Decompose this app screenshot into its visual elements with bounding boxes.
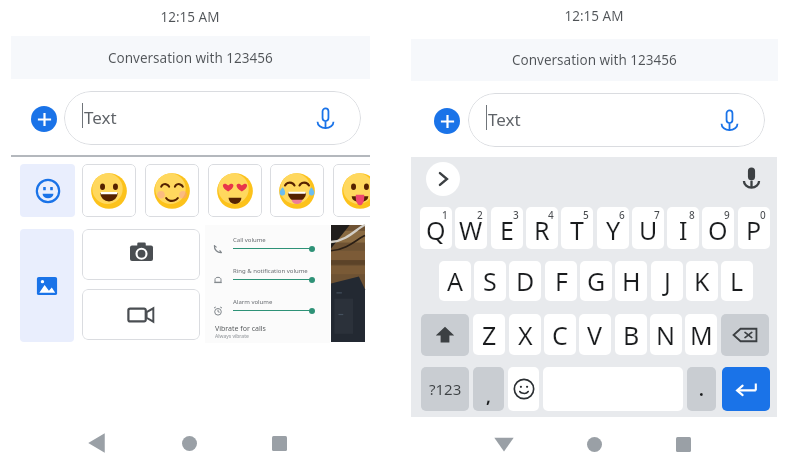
staticText: I [679, 213, 688, 247]
button[interactable]: T [561, 207, 593, 249]
button[interactable]: Add attachment [31, 106, 57, 132]
staticText: 8 [689, 208, 695, 222]
button[interactable]: G [580, 261, 612, 301]
button[interactable]: Emoji 1 [145, 164, 199, 217]
staticText: T [570, 213, 584, 247]
button[interactable]: Video [82, 289, 200, 340]
staticText: D [516, 264, 535, 298]
staticText: W [459, 213, 483, 247]
staticText: Alarm volume [233, 298, 273, 306]
staticText: 5 [583, 208, 589, 222]
staticText: 9 [724, 208, 730, 222]
staticText: Z [482, 318, 497, 352]
staticText: O [708, 213, 728, 247]
button[interactable]: U [632, 207, 664, 249]
staticText: L [730, 264, 744, 298]
button[interactable]: E [491, 207, 523, 249]
button[interactable]: Emoji [508, 367, 539, 411]
staticText: K [694, 264, 710, 298]
button[interactable]: D [509, 261, 541, 301]
staticText: Always vibrate [215, 333, 249, 340]
button[interactable]: L [721, 261, 753, 301]
staticText: U [639, 213, 658, 247]
button[interactable]: Z [473, 314, 505, 355]
button[interactable]: I [667, 207, 699, 249]
staticText: J [664, 264, 671, 298]
button[interactable]: Back [489, 429, 519, 457]
button[interactable]: Period [687, 367, 716, 411]
button[interactable]: Y [597, 207, 629, 249]
button[interactable]: O [702, 207, 734, 249]
staticText: G [587, 264, 606, 298]
staticText: N [656, 318, 676, 352]
staticText: ?123 [429, 379, 462, 399]
button[interactable]: Conversation with 123456 [11, 36, 370, 79]
button[interactable]: Conversation with 123456 [411, 39, 778, 81]
staticText: 0 [760, 208, 766, 222]
button[interactable]: C [544, 314, 576, 355]
button[interactable]: K [686, 261, 718, 301]
button[interactable]: M [685, 314, 717, 355]
staticText: A [447, 264, 463, 298]
staticText: Text [488, 108, 521, 131]
button[interactable]: P [738, 207, 770, 249]
button[interactable]: Home [579, 429, 609, 457]
button[interactable]: Text [64, 91, 361, 145]
button[interactable]: R [526, 207, 558, 249]
staticText: H [622, 264, 641, 298]
button[interactable]: Recent apps [264, 428, 294, 457]
button[interactable]: Emoji 0 [82, 164, 136, 217]
staticText: Text [84, 106, 117, 129]
button[interactable]: Symbols [421, 367, 469, 411]
button[interactable]: Shift [421, 314, 469, 356]
button[interactable]: Enter [722, 367, 770, 411]
staticText: 12:15 AM [554, 7, 634, 25]
button[interactable]: N [650, 314, 682, 355]
button[interactable]: Voice typing [736, 162, 766, 192]
staticText: Vibrate for calls [215, 324, 266, 334]
button[interactable]: Back [84, 428, 114, 457]
button[interactable]: Gallery [20, 229, 74, 342]
button[interactable]: J [651, 261, 683, 301]
button[interactable]: Backspace [721, 314, 769, 356]
staticText: 7 [654, 208, 660, 222]
staticText: X [518, 318, 533, 352]
button[interactable]: Expand toolbar [426, 162, 460, 196]
staticText: R [534, 213, 550, 247]
staticText: C [552, 318, 568, 352]
button[interactable]: Add attachment [434, 108, 460, 134]
staticText: Ring & notification volume [233, 267, 308, 275]
button[interactable]: V [579, 314, 611, 355]
button[interactable]: Emoji 2 [208, 164, 262, 217]
button[interactable]: X [509, 314, 541, 355]
button[interactable]: Text [468, 93, 765, 147]
staticText: E [500, 213, 514, 247]
staticText: M [690, 318, 713, 352]
staticText: V [587, 318, 603, 352]
button[interactable]: F [545, 261, 577, 301]
button[interactable]: Q [420, 207, 452, 249]
staticText: Conversation with 123456 [512, 51, 677, 69]
staticText: Conversation with 123456 [108, 49, 273, 67]
button[interactable]: Voice input [309, 102, 341, 134]
staticText: B [623, 318, 640, 352]
staticText: , [486, 385, 491, 408]
staticText: 4 [548, 208, 554, 222]
staticText: Q [426, 213, 446, 247]
button[interactable]: A [439, 261, 471, 301]
button[interactable]: S [474, 261, 506, 301]
button[interactable]: Comma [473, 367, 504, 411]
staticText: 12:15 AM [150, 8, 230, 26]
staticText: S [483, 264, 497, 298]
button[interactable]: W [455, 207, 487, 249]
button[interactable]: Emoji 4 [333, 164, 370, 217]
button[interactable]: Recent apps [668, 429, 698, 457]
button[interactable]: Camera [82, 229, 200, 280]
button[interactable]: Home [174, 428, 204, 457]
button[interactable]: H [615, 261, 647, 301]
button[interactable]: Emoji 3 [270, 164, 324, 217]
button[interactable]: B [615, 314, 647, 355]
button[interactable]: Emoji category [20, 164, 75, 217]
button[interactable]: Voice input [713, 104, 745, 136]
